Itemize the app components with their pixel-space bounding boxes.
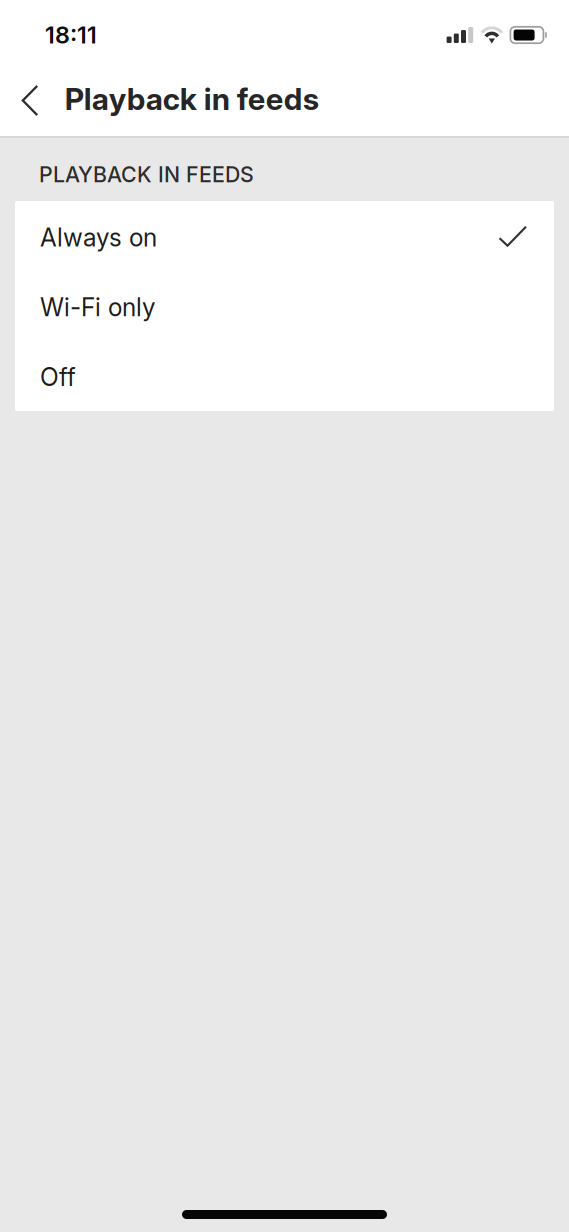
staticText: Off <box>40 362 76 392</box>
button[interactable]: Wi-Fi only <box>15 271 554 341</box>
staticText: Playback in feeds <box>65 81 319 117</box>
button[interactable]: Back <box>0 70 46 136</box>
button[interactable]: Always on <box>15 201 554 271</box>
button[interactable]: Off <box>15 341 554 411</box>
staticText: PLAYBACK IN FEEDS <box>39 162 254 187</box>
staticText: 18:11 <box>45 21 97 49</box>
staticText: Wi-Fi only <box>40 292 155 322</box>
staticText: Always on <box>40 223 157 252</box>
